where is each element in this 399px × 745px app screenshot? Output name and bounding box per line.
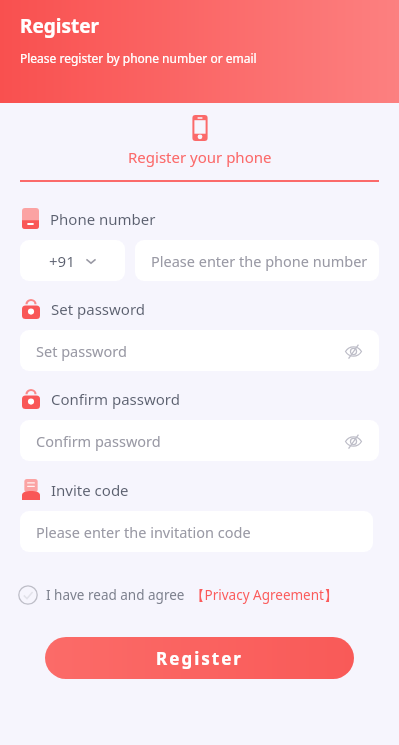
button[interactable]: I have read and agree (18, 585, 338, 605)
staticText: Set password (51, 299, 146, 319)
button[interactable]: Show password (341, 339, 365, 363)
staticText: +91 (49, 251, 75, 271)
staticText: Please enter the phone number (151, 251, 368, 271)
staticText: Please enter the invitation code (36, 522, 251, 542)
staticText: Confirm password (51, 389, 180, 409)
button[interactable]: Register your phone (0, 115, 399, 167)
button[interactable]: Please enter the invitation code (20, 511, 373, 552)
staticText: Register (156, 647, 243, 670)
button[interactable]: Please enter the phone number (135, 240, 379, 281)
staticText: Register (20, 13, 100, 39)
button[interactable]: Show password (341, 429, 365, 453)
button[interactable]: 【Privacy Agreement】 (191, 586, 338, 604)
staticText: Please register by phone number or email (20, 50, 257, 66)
staticText: Phone number (50, 209, 156, 229)
staticText: Confirm password (36, 431, 161, 451)
staticText: Invite code (51, 480, 129, 500)
button[interactable]: +91 (20, 240, 125, 281)
button[interactable]: Set password (20, 330, 379, 371)
staticText: I have read and agree (46, 586, 185, 604)
staticText: Set password (36, 341, 127, 361)
button[interactable]: Confirm password (20, 420, 379, 461)
button[interactable]: Register (45, 637, 354, 679)
staticText: Register your phone (128, 147, 272, 167)
